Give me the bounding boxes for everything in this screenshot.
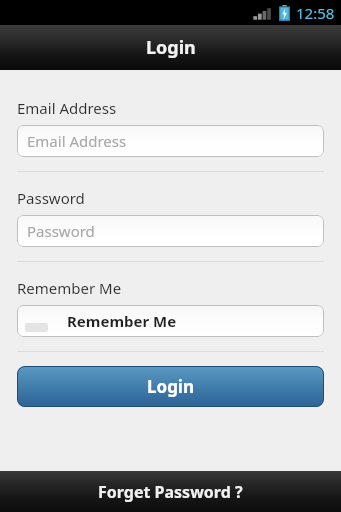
button[interactable]: Remember Me (17, 305, 324, 337)
staticText: 12:58 (296, 3, 335, 23)
staticText: Forget Password ? (98, 481, 243, 503)
staticText: Login (147, 375, 195, 398)
staticText: Email Address (27, 131, 127, 151)
button[interactable]: Password (17, 215, 324, 247)
staticText: Email Address (17, 98, 117, 118)
button[interactable]: Login (17, 366, 324, 407)
button[interactable]: Email Address (17, 125, 324, 157)
staticText: Remember Me (17, 278, 122, 298)
button[interactable]: Forget Password ? (0, 471, 341, 512)
staticText: Password (17, 188, 85, 208)
staticText: Password (27, 221, 95, 241)
staticText: Login (146, 35, 196, 60)
staticText: Remember Me (67, 311, 177, 331)
